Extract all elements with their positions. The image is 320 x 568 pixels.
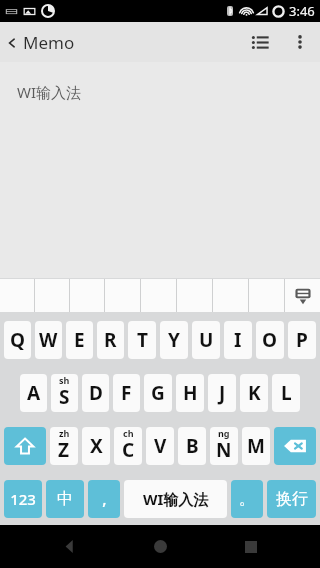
staticText: L bbox=[281, 380, 292, 406]
staticText: P bbox=[296, 327, 308, 353]
button[interactable]: F bbox=[113, 374, 140, 412]
staticText: B bbox=[186, 433, 199, 459]
button[interactable]: H bbox=[176, 374, 204, 412]
button[interactable]: , bbox=[88, 480, 120, 518]
staticText: K bbox=[248, 380, 261, 406]
staticText: 。 bbox=[239, 489, 255, 509]
button[interactable]: L bbox=[272, 374, 300, 412]
button[interactable]: More options bbox=[280, 22, 320, 62]
button[interactable]: G bbox=[144, 374, 172, 412]
staticText: J bbox=[219, 380, 226, 406]
button[interactable]: O bbox=[256, 321, 284, 359]
staticText: S bbox=[59, 384, 70, 410]
button[interactable]: V bbox=[146, 427, 174, 465]
button[interactable]: Back bbox=[47, 525, 91, 568]
staticText: R bbox=[104, 327, 117, 353]
button[interactable]: Memo bbox=[0, 25, 83, 60]
staticText: C bbox=[122, 437, 135, 463]
button[interactable]: WI输入法 bbox=[124, 480, 227, 518]
staticText: 3:46 bbox=[289, 2, 315, 20]
other: Hide keyboard bbox=[285, 279, 320, 312]
button[interactable]: W bbox=[35, 321, 62, 359]
staticText: ch bbox=[123, 427, 134, 439]
staticText: F bbox=[121, 380, 132, 406]
staticText: T bbox=[137, 327, 148, 353]
button[interactable]: Backspace bbox=[274, 427, 316, 465]
staticText: ng bbox=[218, 427, 230, 439]
staticText: Z bbox=[58, 437, 70, 463]
button[interactable]: U bbox=[192, 321, 220, 359]
staticText: H bbox=[183, 380, 198, 406]
button[interactable]: 123 bbox=[4, 480, 42, 518]
staticText: WI输入法 bbox=[17, 82, 82, 102]
button[interactable]: T bbox=[128, 321, 156, 359]
button[interactable]: Y bbox=[160, 321, 188, 359]
button[interactable]: Hide keyboard bbox=[285, 279, 320, 312]
button[interactable]: X bbox=[82, 427, 110, 465]
staticText: A bbox=[27, 380, 41, 406]
staticText: D bbox=[89, 380, 103, 406]
button[interactable]: Q bbox=[4, 321, 31, 359]
button[interactable]: 换行 bbox=[267, 480, 316, 518]
button[interactable]: ch bbox=[114, 427, 142, 465]
staticText: O bbox=[262, 327, 278, 353]
staticText: 换行 bbox=[276, 489, 308, 509]
staticText: G bbox=[151, 380, 165, 406]
staticText: , bbox=[102, 488, 107, 510]
button[interactable]: List view bbox=[240, 22, 280, 62]
button[interactable]: I bbox=[224, 321, 252, 359]
staticText: V bbox=[154, 433, 167, 459]
staticText: X bbox=[90, 433, 103, 459]
staticText: Q bbox=[10, 327, 26, 353]
button[interactable]: 中 bbox=[46, 480, 84, 518]
button[interactable]: B bbox=[178, 427, 206, 465]
button[interactable]: K bbox=[240, 374, 268, 412]
staticText: N bbox=[216, 437, 232, 463]
staticText: 中 bbox=[57, 489, 73, 509]
button[interactable]: zh bbox=[50, 427, 78, 465]
button[interactable]: E bbox=[66, 321, 93, 359]
button[interactable]: Home bbox=[138, 525, 182, 568]
staticText: U bbox=[199, 327, 214, 353]
button[interactable]: M bbox=[242, 427, 270, 465]
staticText: W bbox=[39, 327, 58, 353]
staticText: I bbox=[234, 327, 242, 353]
staticText: M bbox=[247, 433, 265, 459]
button[interactable]: sh bbox=[51, 374, 78, 412]
staticText: WI输入法 bbox=[143, 489, 209, 509]
button[interactable]: R bbox=[97, 321, 124, 359]
staticText: sh bbox=[59, 374, 70, 386]
button[interactable]: J bbox=[208, 374, 236, 412]
staticText: Memo bbox=[23, 31, 75, 54]
staticText: 123 bbox=[10, 489, 36, 509]
button[interactable]: Shift bbox=[4, 427, 46, 465]
staticText: Y bbox=[168, 327, 180, 353]
button[interactable]: Recents bbox=[229, 525, 273, 568]
button[interactable]: A bbox=[20, 374, 47, 412]
button[interactable]: ng bbox=[210, 427, 238, 465]
staticText: E bbox=[74, 327, 85, 353]
button[interactable]: 。 bbox=[231, 480, 263, 518]
button[interactable]: P bbox=[288, 321, 316, 359]
staticText: zh bbox=[59, 427, 70, 439]
button[interactable]: D bbox=[82, 374, 109, 412]
